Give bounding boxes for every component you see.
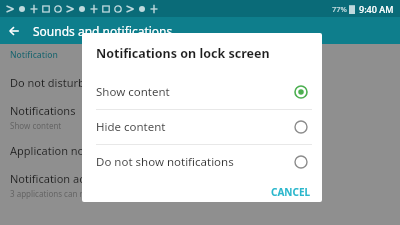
button[interactable]: Notifications [0,103,400,131]
staticText: Application notifications [10,143,135,158]
staticText: CANCEL [271,185,311,196]
staticText: Notifications on lock screen [96,45,270,62]
staticText: 9:40 AM [359,3,394,15]
staticText: Notification [10,49,58,61]
button[interactable]: Notification access [0,171,400,199]
staticText: Hide content [96,119,294,135]
staticText: Do not disturb [10,75,85,90]
button[interactable]: CANCEL [260,179,322,202]
button[interactable]: Do not disturb [0,75,400,90]
staticText: Do not show notifications [96,154,294,170]
staticText: Notification access [10,171,107,186]
button[interactable]: Application notifications [0,143,400,158]
staticText: 3 applications can read notifications. [10,188,148,199]
staticText: 77% [332,4,347,14]
staticText: Notifications [10,103,76,118]
button[interactable]: Do not show notifications [82,145,322,179]
staticText: Show content [10,120,62,131]
button[interactable]: Back [0,17,27,44]
staticText: Sounds and notifications [33,23,173,39]
button[interactable]: Show content [82,75,322,109]
button[interactable]: Hide content [82,110,322,144]
staticText: Show content [96,84,294,100]
